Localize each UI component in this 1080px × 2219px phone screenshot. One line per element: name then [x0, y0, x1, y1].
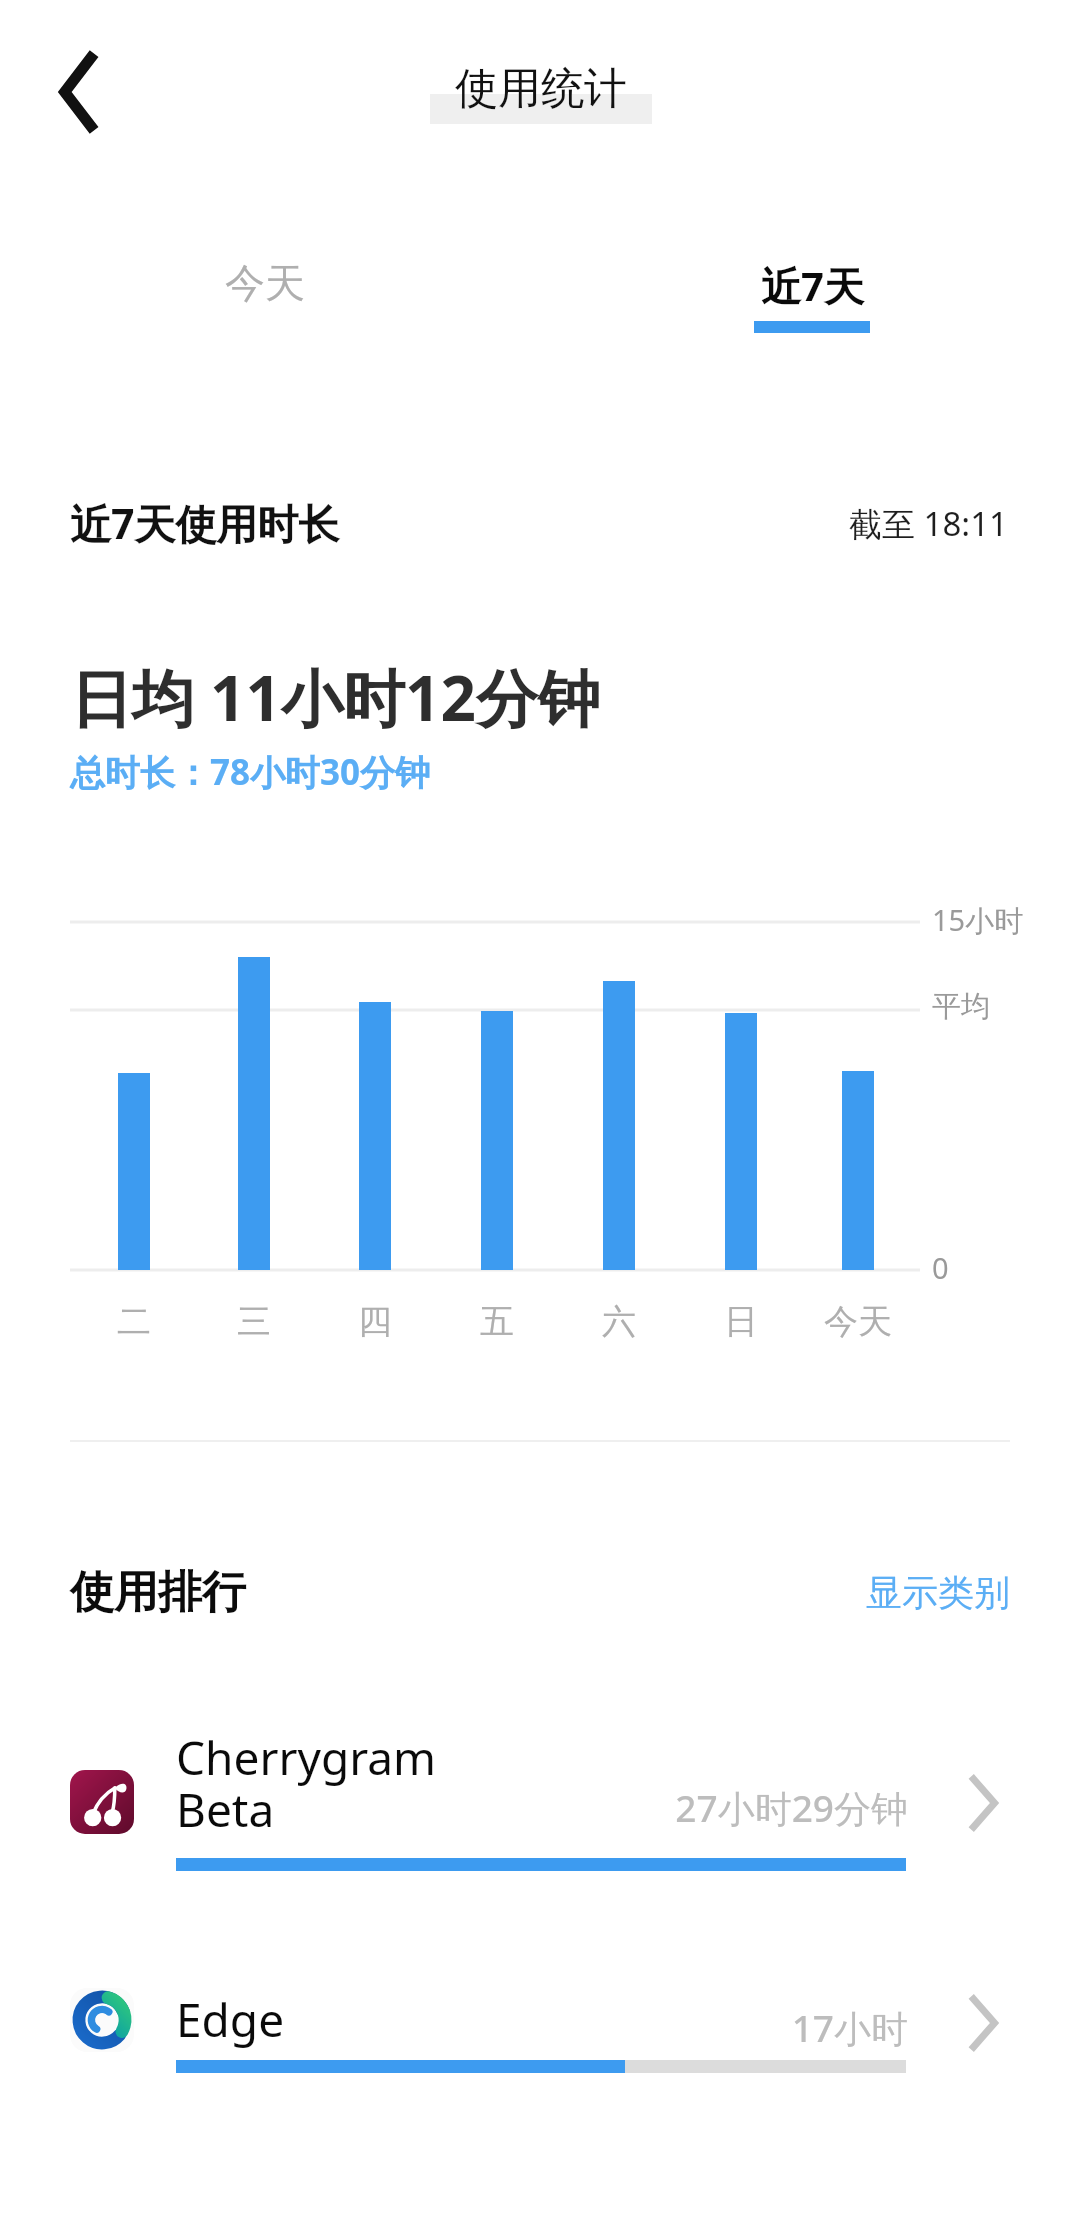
- staticText: 截至 18:11: [849, 501, 1008, 546]
- button[interactable]: 显示类别: [866, 1570, 1010, 1615]
- staticText: 使用统计: [430, 62, 652, 116]
- staticText: 使用排行: [70, 1565, 246, 1620]
- staticText: 三: [237, 1300, 271, 1343]
- staticText: Cherrygram Beta: [176, 1726, 437, 1840]
- staticText: 二: [117, 1300, 151, 1343]
- staticText: 15小时: [932, 900, 1024, 940]
- staticText: Edge: [176, 1988, 285, 2051]
- staticText: 日: [724, 1300, 758, 1343]
- button[interactable]: Edge: [0, 1960, 1080, 2110]
- other: Details: [955, 1992, 1017, 2054]
- staticText: 0: [932, 1248, 949, 1287]
- staticText: 近7天使用时长: [70, 495, 340, 551]
- button[interactable]: 近7天: [700, 258, 924, 354]
- staticText: 今天: [824, 1300, 892, 1343]
- staticText: 显示类别: [866, 1570, 1010, 1615]
- other: Details: [955, 1772, 1017, 1834]
- button[interactable]: 今天: [150, 258, 380, 354]
- button[interactable]: Cherrygram Beta: [0, 1720, 1080, 1910]
- staticText: 今天: [225, 258, 305, 308]
- staticText: 四: [358, 1300, 392, 1343]
- staticText: 27小时29分钟: [675, 1782, 908, 1833]
- staticText: 总时长：78小时30分钟: [70, 748, 431, 796]
- staticText: 平均: [932, 988, 990, 1025]
- staticText: 五: [480, 1300, 514, 1343]
- staticText: 近7天: [761, 258, 864, 313]
- button[interactable]: Back: [34, 48, 122, 136]
- staticText: 17小时: [791, 2002, 908, 2053]
- staticText: 日均 11小时12分钟: [70, 655, 600, 740]
- staticText: 六: [602, 1300, 636, 1343]
